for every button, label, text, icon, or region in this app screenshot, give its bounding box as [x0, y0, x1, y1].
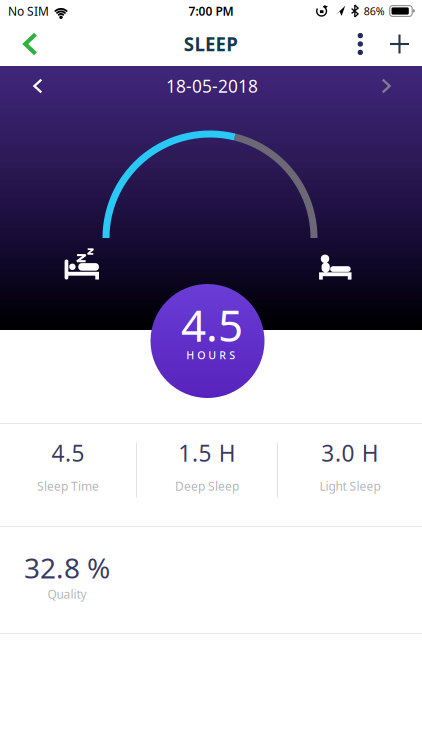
staticText: SLEEP — [184, 32, 238, 56]
button[interactable] — [0, 32, 58, 55]
staticText: Deep Sleep — [175, 478, 239, 494]
button[interactable] — [380, 34, 422, 53]
staticText: No SIM — [8, 3, 49, 19]
button[interactable] — [0, 79, 55, 93]
staticText: 32.8 % — [24, 549, 110, 586]
staticText: Quality — [47, 586, 86, 602]
staticText: 18-05-2018 — [166, 74, 258, 97]
staticText: H O U R S — [186, 348, 235, 362]
staticText: 86% — [364, 4, 385, 18]
button[interactable] — [369, 79, 422, 93]
staticText: 4.5 — [51, 438, 85, 468]
staticText: Sleep Time — [37, 478, 99, 494]
staticText: 3.0 H — [321, 438, 379, 468]
staticText: 1.5 H — [178, 438, 236, 468]
button[interactable] — [351, 33, 380, 55]
staticText: Light Sleep — [319, 478, 380, 494]
staticText: 4.5 — [181, 295, 243, 354]
staticText: 7:00 PM — [188, 3, 233, 19]
